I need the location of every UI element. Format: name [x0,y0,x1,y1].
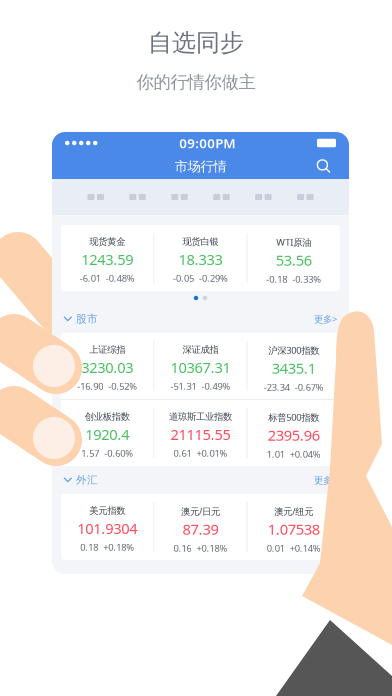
staticText: 53.56 [276,250,312,270]
staticText: 2395.96 [268,425,320,445]
staticText: 1243.59 [81,249,133,269]
staticText: 标普500指数 [268,411,319,423]
staticText: 自选同步 [148,28,244,57]
staticText: 更多> [314,474,337,486]
button[interactable]: WTI原油 [248,225,340,291]
staticText: 现货黄金 [89,236,125,247]
button[interactable]: 澳元/纽元 [248,494,340,560]
staticText: 1.57 [81,447,99,459]
staticText: 0.18 [80,541,98,553]
staticText: 3435.1 [272,358,316,378]
staticText: 10367.31 [170,357,230,377]
staticText: +0.14% [290,542,321,554]
staticText: 21115.55 [170,424,230,444]
staticText: -0.33% [292,273,321,285]
staticText: 外汇 [76,473,98,486]
staticText: 87.39 [182,519,218,539]
button[interactable]: 更多> [314,305,349,333]
staticText: +0.04% [290,448,321,460]
staticText: -0.67% [295,381,324,393]
staticText: 澳元/纽元 [274,505,313,517]
button[interactable]: 现货白银 [154,225,247,291]
staticText: -0.05 [173,272,194,284]
staticText: 股市 [76,312,98,325]
staticText: 1.01 [267,448,285,460]
staticText: -6.01 [80,272,101,284]
staticText: 你的行情你做主 [136,71,255,93]
staticText: -0.48% [106,272,135,284]
staticText: WTI原油 [276,236,311,248]
staticText: -23.34 [264,381,290,393]
staticText: 1.07538 [268,519,320,539]
staticText: -0.18 [266,273,287,285]
staticText: 09:00PM [179,134,235,152]
staticText: +0.18% [103,541,134,553]
staticText: 市场行情 [174,158,226,175]
staticText: 道琼斯工业指数 [169,411,232,422]
button[interactable]: 深证成指 [154,333,247,399]
staticText: 澳元/日元 [181,505,220,517]
button[interactable]: 上证综指 [61,333,153,399]
staticText: -0.49% [201,380,230,392]
button[interactable]: 道琼斯工业指数 [154,400,247,466]
button[interactable]: 美元指数 [61,494,153,560]
staticText: 1920.4 [85,424,129,444]
button[interactable]: 标普500指数 [248,400,340,466]
staticText: +0.18% [196,542,227,554]
button[interactable]: 外汇 [52,466,98,494]
staticText: 101.9304 [77,518,137,538]
staticText: 现货白银 [182,236,218,247]
staticText: 深证成指 [182,344,218,355]
staticText: 沪深300指数 [268,344,319,356]
button[interactable]: 创业板指数 [61,400,153,466]
staticText: -0.29% [199,272,228,284]
button[interactable]: 搜索 [310,153,338,179]
staticText: 上证综指 [89,344,125,355]
staticText: 创业板指数 [85,411,130,422]
staticText: 18.333 [178,249,222,269]
staticText: 3230.03 [81,357,133,377]
button[interactable]: 澳元/日元 [154,494,247,560]
button[interactable]: 沪深300指数 [248,333,340,399]
staticText: +0.01% [196,447,227,459]
staticText: 更多> [314,313,337,325]
staticText: -0.52% [108,380,137,392]
button[interactable]: 更多> [314,466,349,494]
button[interactable]: 股市 [52,305,98,333]
staticText: -0.60% [104,447,133,459]
staticText: 0.61 [173,447,191,459]
button[interactable]: 现货黄金 [61,225,153,291]
staticText: -16.90 [77,380,103,392]
staticText: 0.16 [173,542,191,554]
staticText: 美元指数 [89,505,125,516]
staticText: 0.01 [267,542,285,554]
staticText: -51.31 [170,380,196,392]
